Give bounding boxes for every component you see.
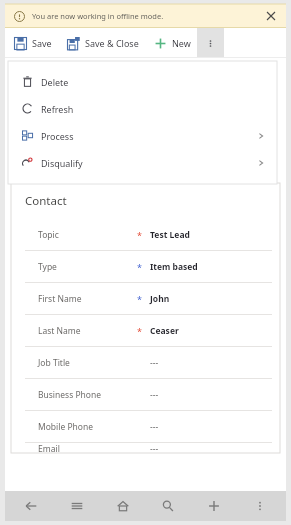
staticText: * [137,229,142,241]
button[interactable]: Job Title [11,346,280,378]
button[interactable]: First Name [11,282,280,314]
staticText: * [137,261,142,273]
button[interactable]: Add [194,491,234,521]
button[interactable]: Last Name [11,314,280,346]
staticText: Save [32,37,52,49]
button[interactable]: Search [148,491,188,521]
staticText: Process [41,130,74,142]
button[interactable]: Menu [57,491,97,521]
button[interactable]: Email [11,442,280,453]
staticText: --- [150,443,159,453]
button[interactable]: Dismiss offline notification [262,7,280,25]
staticText: Item based [150,261,198,273]
staticText: * [137,325,142,337]
button[interactable]: Topic [11,219,280,250]
button[interactable]: Type [11,250,280,282]
staticText: --- [150,357,159,369]
staticText: --- [150,389,159,401]
staticText: Delete [41,76,69,88]
staticText: Job Title [38,357,133,369]
staticText: Disqualify [41,157,83,169]
staticText: New [172,37,191,49]
button[interactable]: Back [11,491,51,521]
staticText: Type [38,261,133,273]
staticText: Mobile Phone [38,421,133,433]
staticText: Email [38,443,133,453]
staticText: First Name [38,293,133,305]
staticText: Save & Close [85,37,139,49]
staticText: Topic [38,229,133,241]
staticText: --- [150,421,159,433]
staticText: * [137,293,142,305]
button[interactable]: Disqualify [8,149,277,176]
staticText: Business Phone [38,389,133,401]
button[interactable]: Business Phone [11,378,280,410]
button[interactable]: Process [8,122,277,149]
staticText: John [150,293,170,305]
staticText: Test Lead [150,229,190,241]
staticText: Last Name [38,325,133,337]
staticText: Refresh [41,103,74,115]
staticText: You are now working in offline mode. [32,11,164,21]
button[interactable]: Delete [8,68,277,95]
button[interactable]: Refresh [8,95,277,122]
staticText: Contact [25,193,67,209]
button[interactable]: New [145,28,197,58]
button[interactable]: Save & Close [58,28,145,58]
button[interactable]: More options [240,491,280,521]
button[interactable]: More commands [197,28,224,58]
button[interactable]: Mobile Phone [11,410,280,442]
staticText: Ceaser [150,325,179,337]
button[interactable]: Save [5,28,58,58]
button[interactable]: Home [103,491,143,521]
